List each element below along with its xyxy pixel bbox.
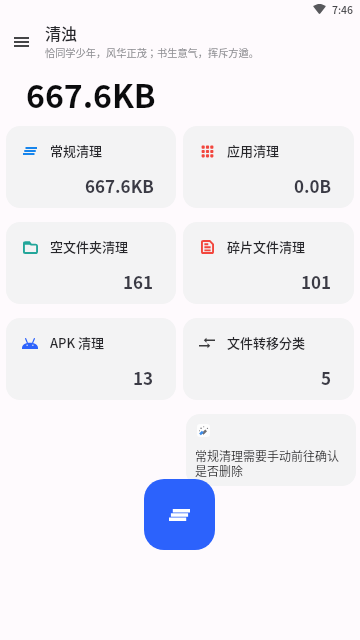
staticText: 常规清理	[50, 141, 103, 160]
button[interactable]: Menu	[7, 28, 35, 56]
staticText: 文件转移分类	[227, 333, 306, 352]
staticText: 101	[301, 269, 332, 294]
staticText: APK 清理	[50, 333, 105, 352]
staticText: 常规清理需要手动前往确认是否删除	[195, 447, 343, 479]
staticText: 667.6KB	[85, 173, 154, 198]
button[interactable]: 碎片文件清理	[183, 222, 354, 304]
staticText: 清浊	[45, 21, 78, 44]
staticText: 13	[133, 365, 154, 390]
staticText: 碎片文件清理	[227, 237, 306, 256]
staticText: 恰同学少年，风华正茂；书生意气，挥斥方遒。	[45, 45, 259, 60]
button[interactable]: 应用清理	[183, 126, 354, 208]
button[interactable]: APK 清理	[6, 318, 176, 400]
button[interactable]: 文件转移分类	[183, 318, 354, 400]
staticText: 667.6KB	[26, 71, 156, 117]
button[interactable]: 空文件夹清理	[6, 222, 176, 304]
button[interactable]: 常规清理	[6, 126, 176, 208]
staticText: 应用清理	[227, 141, 280, 160]
button[interactable]: Clean	[144, 479, 215, 550]
staticText: 空文件夹清理	[50, 237, 129, 256]
staticText: 5	[321, 365, 332, 390]
staticText: 0.0B	[294, 173, 332, 198]
staticText: 7:46	[332, 2, 354, 17]
staticText: 161	[123, 269, 154, 294]
